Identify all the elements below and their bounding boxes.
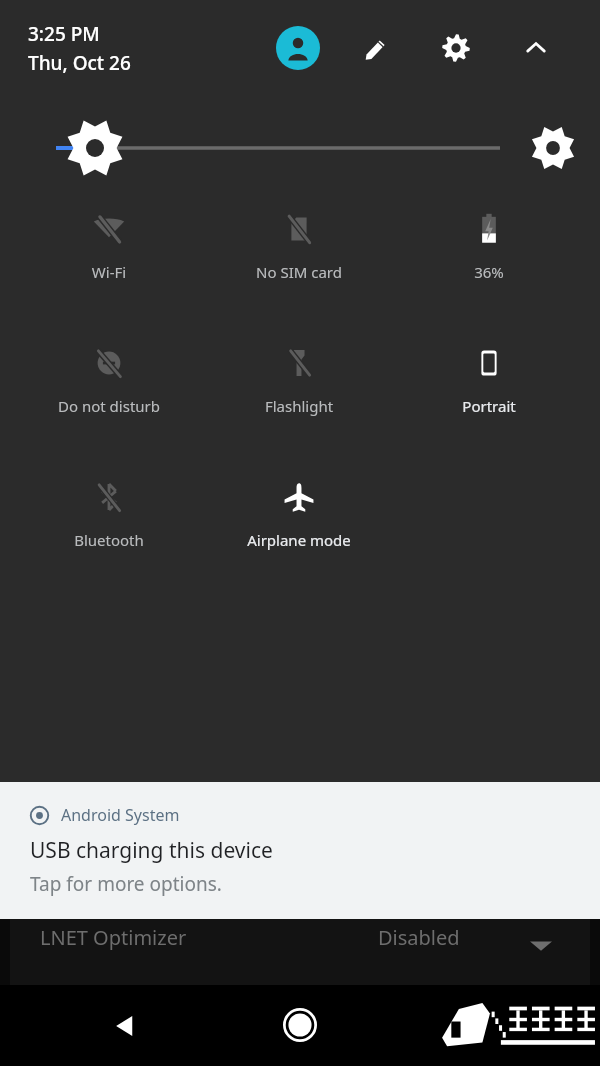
staticText: Portrait: [394, 396, 584, 416]
staticText: Disabled: [378, 924, 460, 951]
other: Portrait: [470, 344, 508, 382]
staticText: Flashlight: [204, 396, 394, 416]
staticText: Thu, Oct 26: [28, 50, 131, 76]
button[interactable]: Airplane mode: [204, 478, 394, 550]
other: Flashlight: [280, 344, 318, 382]
staticText: Android System: [61, 804, 180, 826]
other: Bluetooth: [90, 478, 128, 516]
other: Do not disturb: [90, 344, 128, 382]
other: Wi-Fi: [90, 210, 128, 248]
button[interactable]: LNET Optimizer: [10, 919, 590, 985]
staticText: Bluetooth: [14, 530, 204, 550]
button[interactable]: No SIM card: [204, 210, 394, 282]
button[interactable]: Portrait: [394, 344, 584, 416]
button[interactable]: 36%: [394, 210, 584, 282]
staticText: 36%: [394, 262, 584, 282]
button[interactable]: Home: [274, 999, 326, 1051]
staticText: Tap for more options.: [30, 871, 222, 897]
staticText: USB charging this device: [30, 836, 273, 865]
staticText: No SIM card: [204, 262, 394, 282]
staticText: LNET Optimizer: [40, 924, 187, 951]
staticText: 3:25 PM: [28, 21, 100, 47]
button[interactable]: Collapse: [516, 28, 556, 68]
button[interactable]: Bluetooth: [14, 478, 204, 550]
staticText: Wi-Fi: [14, 262, 204, 282]
button[interactable]: Brightness: [0, 108, 600, 188]
staticText: Airplane mode: [204, 530, 394, 550]
other: Airplane mode: [280, 478, 318, 516]
button[interactable]: Do not disturb: [14, 344, 204, 416]
other: No SIM card: [280, 210, 318, 248]
button[interactable]: Flashlight: [204, 344, 394, 416]
staticText: Do not disturb: [14, 396, 204, 416]
button[interactable]: Back: [100, 1001, 150, 1051]
button[interactable]: Settings: [436, 28, 476, 68]
button[interactable]: Edit: [356, 28, 396, 68]
button[interactable]: Android System: [0, 782, 600, 919]
button[interactable]: User profile: [276, 26, 320, 70]
other: 36%: [470, 210, 508, 248]
button[interactable]: Wi-Fi: [14, 210, 204, 282]
